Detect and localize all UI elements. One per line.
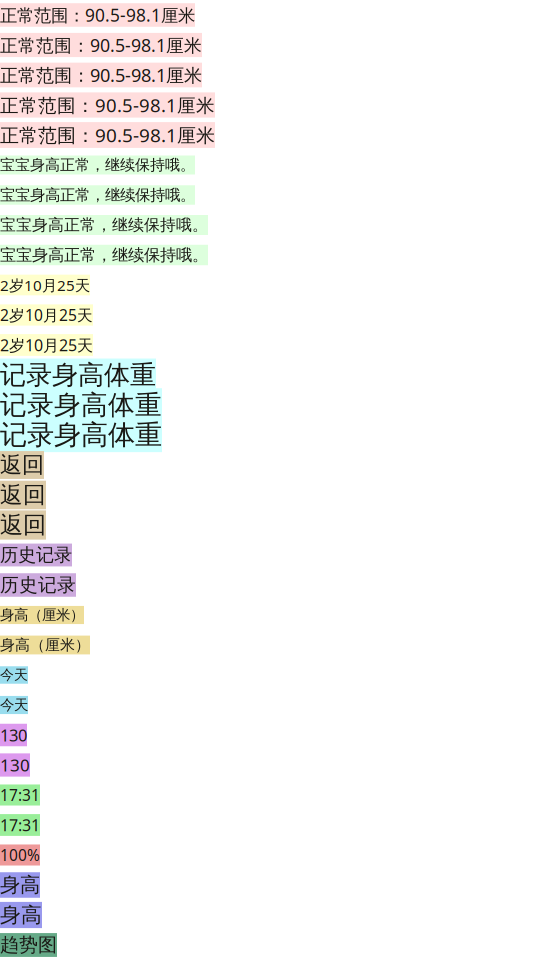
staticText: 历史记录 xyxy=(0,573,76,597)
staticText: 返回 xyxy=(0,451,44,479)
staticText: 2岁10月25天 xyxy=(0,275,90,295)
staticText: 趋势图 xyxy=(0,933,57,957)
staticText: 记录身高体重 xyxy=(0,388,162,422)
staticText: 正常范围：90.5-98.1厘米 xyxy=(0,63,202,87)
staticText: 2岁10月25天 xyxy=(0,304,93,326)
staticText: 记录身高体重 xyxy=(0,418,162,452)
staticText: 宝宝身高正常，继续保持哦。 xyxy=(0,185,195,205)
staticText: 身高 xyxy=(0,872,40,898)
staticText: 今天 xyxy=(0,666,28,684)
staticText: 返回 xyxy=(0,510,46,540)
staticText: 身高（厘米） xyxy=(0,606,84,624)
staticText: 正常范围：90.5-98.1厘米 xyxy=(0,92,215,118)
staticText: 身高（厘米） xyxy=(0,636,90,654)
staticText: 今天 xyxy=(0,696,28,714)
staticText: 宝宝身高正常，继续保持哦。 xyxy=(0,155,195,174)
staticText: 17:31 xyxy=(0,814,40,836)
staticText: 返回 xyxy=(0,481,46,509)
staticText: 历史记录 xyxy=(0,544,72,566)
staticText: 17:31 xyxy=(0,784,40,806)
staticText: 宝宝身高正常，继续保持哦。 xyxy=(0,245,208,265)
staticText: 130 xyxy=(0,753,30,777)
staticText: 100% xyxy=(0,844,40,866)
staticText: 记录身高体重 xyxy=(0,358,156,391)
staticText: 宝宝身高正常，继续保持哦。 xyxy=(0,215,208,235)
staticText: 正常范围：90.5-98.1厘米 xyxy=(0,33,202,57)
staticText: 正常范围：90.5-98.1厘米 xyxy=(0,3,195,27)
staticText: 正常范围：90.5-98.1厘米 xyxy=(0,122,215,148)
staticText: 身高 xyxy=(0,902,42,928)
staticText: 2岁10月25天 xyxy=(0,334,93,356)
staticText: 130 xyxy=(0,724,27,746)
